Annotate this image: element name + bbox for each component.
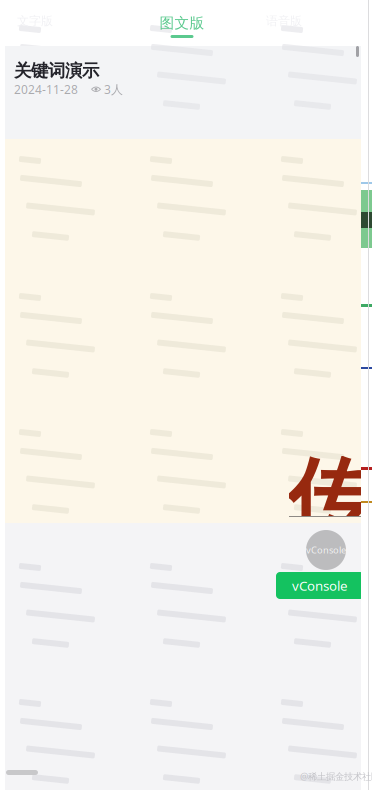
staticText: 关键词演示 — [14, 60, 99, 81]
staticText: 3人 — [104, 81, 123, 97]
staticText: vConsole — [306, 544, 346, 556]
staticText: 文字版 — [17, 14, 53, 28]
staticText: 图文版 — [159, 14, 204, 32]
button[interactable]: vConsole — [276, 572, 364, 599]
button[interactable]: 文字版 — [5, 10, 65, 32]
staticText: 2024-11-28 — [14, 81, 78, 97]
button[interactable]: Open vConsole — [305, 530, 347, 570]
button[interactable]: 语音版 — [254, 10, 314, 32]
button[interactable]: 图文版 — [147, 12, 217, 40]
staticText: 语音版 — [266, 14, 302, 28]
staticText: 传 — [287, 447, 372, 552]
staticText: @稀土掘金技术社区 — [300, 770, 372, 782]
staticText: vConsole — [292, 577, 348, 594]
